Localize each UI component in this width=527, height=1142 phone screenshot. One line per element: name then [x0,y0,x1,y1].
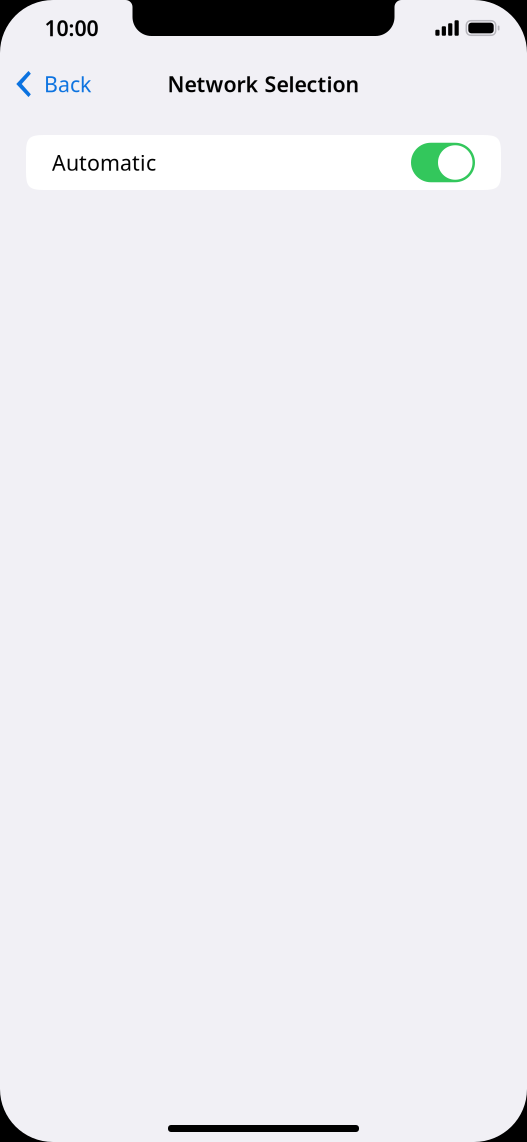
staticText: Automatic [52,148,156,177]
staticText: Network Selection [167,70,359,98]
staticText: 10:00 [44,14,98,42]
button[interactable]: Back [0,62,103,106]
button[interactable]: Automatic network selection, on [411,143,475,182]
staticText: Back [44,70,91,98]
